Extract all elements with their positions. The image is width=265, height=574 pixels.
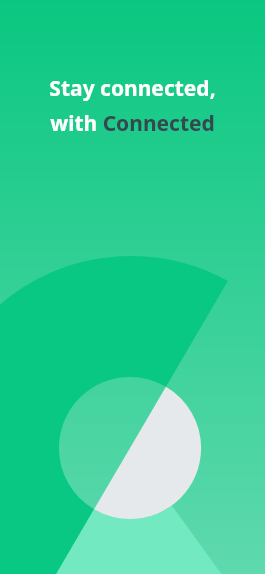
- staticText: Stay connected,: [49, 74, 216, 103]
- staticText: with Connected: [50, 109, 215, 138]
